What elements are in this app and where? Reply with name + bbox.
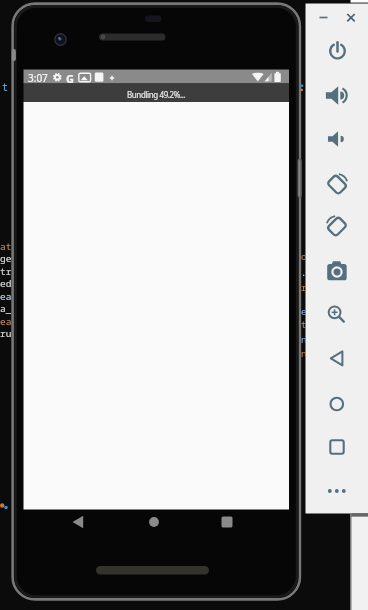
button[interactable] bbox=[325, 83, 349, 107]
staticText: t bbox=[2, 80, 8, 94]
staticText: G bbox=[66, 71, 74, 86]
staticText: t bbox=[301, 318, 307, 330]
button[interactable] bbox=[325, 39, 349, 63]
button[interactable] bbox=[325, 127, 349, 151]
staticText: ea bbox=[0, 290, 12, 303]
button[interactable] bbox=[325, 257, 349, 281]
staticText: tr bbox=[0, 265, 12, 278]
button[interactable] bbox=[325, 346, 349, 370]
staticText: n bbox=[301, 347, 307, 359]
button[interactable] bbox=[325, 214, 349, 238]
staticText: 3:07 bbox=[28, 71, 48, 85]
button[interactable] bbox=[68, 513, 88, 531]
staticText: Bundling 49.2%... bbox=[127, 89, 186, 100]
staticText: ge bbox=[0, 252, 12, 265]
staticText: n bbox=[301, 333, 307, 345]
staticText: at bbox=[0, 240, 12, 253]
button[interactable] bbox=[344, 10, 358, 24]
staticText: ru bbox=[0, 327, 12, 340]
button[interactable] bbox=[325, 303, 349, 327]
button[interactable] bbox=[317, 10, 331, 24]
button[interactable] bbox=[325, 392, 349, 416]
staticText: a_ bbox=[0, 302, 12, 315]
button[interactable] bbox=[325, 479, 349, 503]
staticText: ed bbox=[0, 277, 12, 290]
button[interactable] bbox=[325, 172, 349, 196]
staticText: . bbox=[301, 266, 307, 278]
staticText: ea bbox=[0, 315, 12, 328]
staticText: e bbox=[301, 305, 307, 317]
button[interactable] bbox=[217, 513, 237, 531]
staticText: o bbox=[301, 250, 307, 262]
button[interactable] bbox=[325, 435, 349, 459]
button[interactable] bbox=[144, 513, 164, 531]
staticText: r bbox=[301, 281, 307, 293]
